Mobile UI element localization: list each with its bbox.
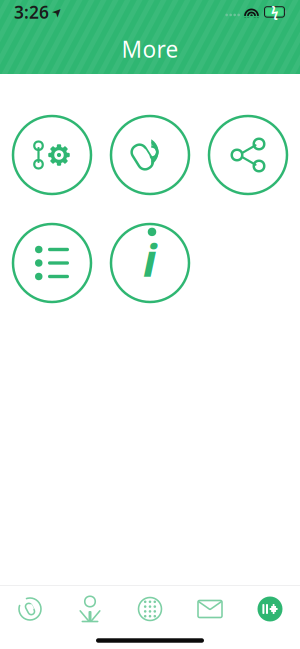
staticText: More bbox=[121, 34, 178, 64]
button[interactable]: Voicemail bbox=[180, 587, 240, 631]
button[interactable]: Activity log bbox=[13, 224, 91, 302]
button[interactable]: Contacts bbox=[60, 587, 120, 631]
button[interactable]: More bbox=[240, 587, 300, 631]
staticText: i bbox=[143, 229, 157, 289]
staticText: ϟ bbox=[271, 3, 278, 21]
button[interactable]: About bbox=[111, 224, 189, 302]
button[interactable]: Settings bbox=[13, 116, 91, 194]
button[interactable]: Share bbox=[209, 116, 287, 194]
staticText: ➤ bbox=[52, 5, 62, 19]
button[interactable]: Recents bbox=[0, 587, 60, 631]
button[interactable]: Ringtones bbox=[111, 116, 189, 194]
staticText: 3:26 bbox=[14, 0, 49, 23]
button[interactable]: Keypad bbox=[120, 587, 180, 631]
